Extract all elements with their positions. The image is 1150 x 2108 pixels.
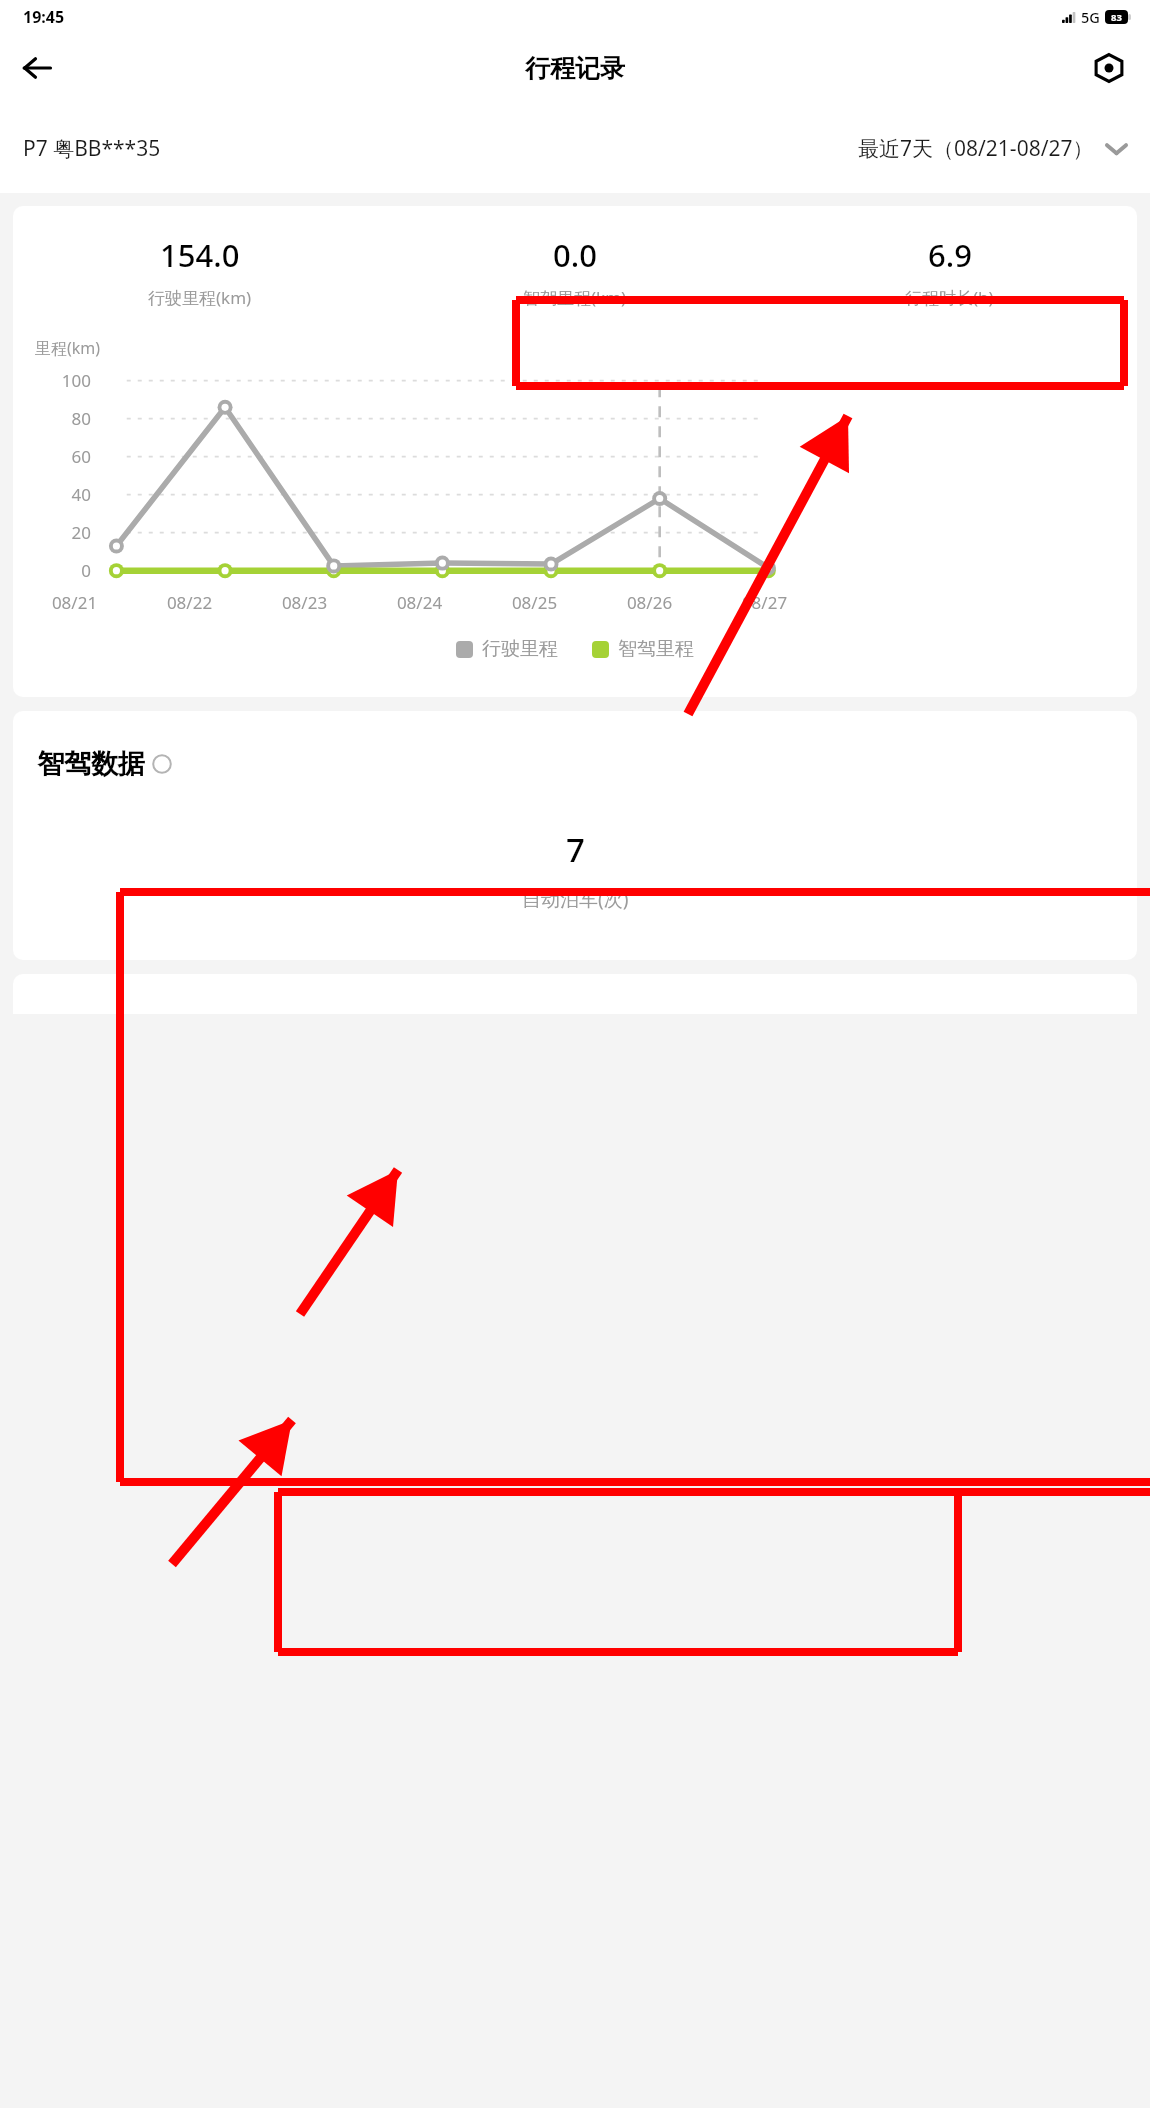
button[interactable]: 行驶里程 <box>456 637 558 661</box>
staticText: 行驶里程 <box>482 637 558 661</box>
staticText: 19:45 <box>23 6 65 28</box>
button[interactable]: 最近7天（08/21-08/27） <box>858 134 1127 163</box>
staticText: 6.9 <box>928 234 972 276</box>
staticText: 5G <box>1081 7 1100 27</box>
staticText: 80 <box>15 407 91 430</box>
staticText: 08/26 <box>592 591 707 614</box>
staticText: 7 <box>566 827 585 872</box>
button[interactable]: Back <box>8 39 66 97</box>
staticText: 智驾里程(km) <box>523 286 627 309</box>
button[interactable]: 智驾里程 <box>592 637 694 661</box>
staticText: 最近7天（08/21-08/27） <box>858 134 1094 163</box>
staticText: 08/21 <box>17 591 132 614</box>
staticText: 行驶里程(km) <box>148 286 252 309</box>
staticText: 100 <box>15 369 91 392</box>
staticText: 08/23 <box>247 591 362 614</box>
staticText: 智驾数据 <box>37 747 145 781</box>
staticText: 08/24 <box>362 591 477 614</box>
staticText: 83 <box>1111 11 1122 24</box>
staticText: 08/22 <box>132 591 247 614</box>
staticText: 行程记录 <box>525 53 625 84</box>
staticText: 154.0 <box>160 234 240 276</box>
staticText: 0.0 <box>553 234 597 276</box>
button[interactable]: 智驾数据 <box>37 747 172 781</box>
staticText: P7 粤BB***35 <box>23 134 161 163</box>
staticText: 08/27 <box>707 591 822 614</box>
other: Help <box>152 754 172 774</box>
staticText: 60 <box>15 445 91 468</box>
button[interactable]: Settings <box>1080 39 1138 97</box>
staticText: 08/25 <box>477 591 592 614</box>
staticText: 行程时长(h) <box>905 286 994 309</box>
staticText: 0 <box>15 559 91 582</box>
staticText: 20 <box>15 521 91 544</box>
staticText: 40 <box>15 483 91 506</box>
staticText: 智驾里程 <box>618 637 694 661</box>
staticText: 自动泊车(次) <box>522 886 629 912</box>
staticText: 里程(km) <box>35 337 101 359</box>
